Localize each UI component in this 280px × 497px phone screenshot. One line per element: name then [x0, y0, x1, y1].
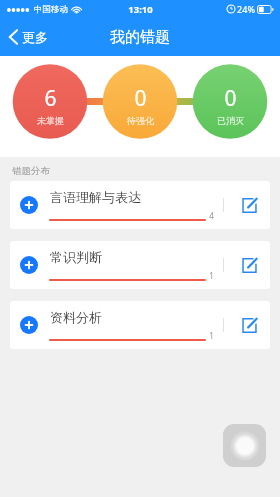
staticText: 6 — [44, 84, 57, 113]
staticText: 资料分析 — [50, 309, 102, 325]
button[interactable]: 0 — [193, 65, 267, 139]
staticText: 中国移动 — [34, 4, 68, 15]
staticText: 1 — [209, 330, 214, 341]
staticText: 24% — [237, 3, 255, 15]
button[interactable]: 6 — [13, 65, 87, 139]
staticText: 未掌握 — [37, 115, 64, 126]
staticText: 1 — [209, 270, 214, 281]
button[interactable]: Edit — [234, 250, 264, 280]
button[interactable]: 常识判断 — [10, 241, 270, 289]
staticText: 更多 — [22, 29, 48, 45]
staticText: 常识判断 — [50, 249, 102, 265]
staticText: 我的错题 — [110, 28, 170, 47]
button[interactable]: AssistiveTouch — [223, 424, 266, 467]
staticText: 0 — [134, 84, 147, 113]
staticText: 错题分布 — [12, 165, 50, 177]
button[interactable]: 言语理解与表达 — [10, 181, 270, 229]
button[interactable]: Edit — [234, 310, 264, 340]
staticText: 言语理解与表达 — [50, 189, 141, 205]
staticText: 已消灭 — [217, 115, 244, 126]
staticText: 4 — [209, 210, 214, 221]
staticText: 待强化 — [127, 115, 154, 126]
button[interactable]: Edit — [234, 190, 264, 220]
staticText: 13:10 — [128, 3, 153, 16]
button[interactable]: 资料分析 — [10, 301, 270, 349]
button[interactable]: 0 — [103, 65, 177, 139]
staticText: 0 — [224, 84, 237, 113]
button[interactable]: 更多 — [0, 24, 56, 50]
